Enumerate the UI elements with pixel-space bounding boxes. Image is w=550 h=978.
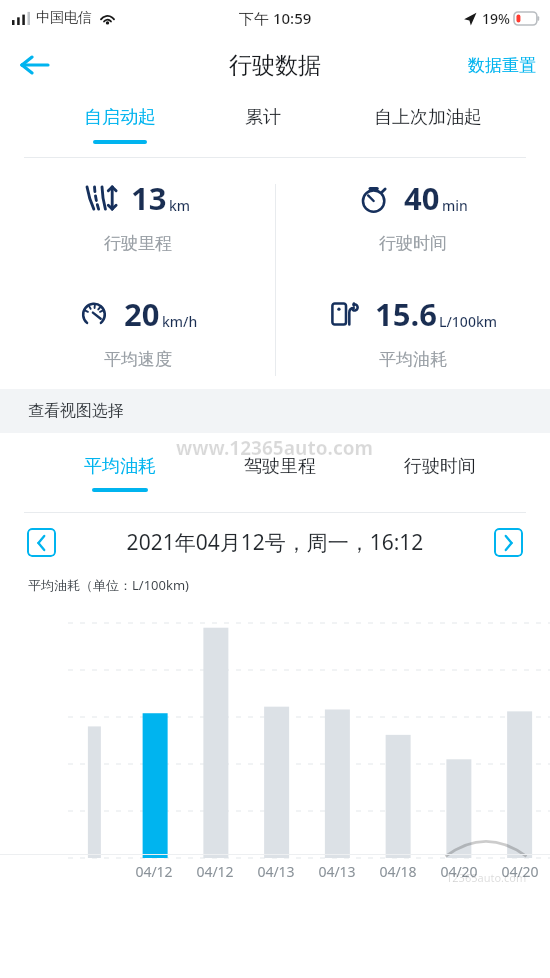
staticText: 19% <box>482 9 510 28</box>
staticText: www.12365auto.com <box>176 435 374 461</box>
button[interactable]: 40 <box>275 158 550 273</box>
staticText: 04/13 <box>257 862 295 881</box>
staticText: 数据重置 <box>468 55 536 76</box>
staticText: 04/13 <box>318 862 356 881</box>
staticText: 中国电信 <box>36 9 92 27</box>
staticText: 行驶时间 <box>404 455 476 478</box>
staticText: L/100km <box>439 312 497 331</box>
staticText: 40 <box>404 177 440 219</box>
staticText: 04/12 <box>196 862 234 881</box>
staticText: 04/20 <box>440 862 478 881</box>
staticText: 13 <box>131 177 167 219</box>
staticText: km/h <box>162 312 198 331</box>
button[interactable]: 平均油耗 <box>40 433 200 492</box>
staticText: 2021年04月12号，周一，16:12 <box>56 528 494 557</box>
staticText: 下午 10:59 <box>239 8 312 28</box>
staticText: 平均油耗 <box>84 455 156 478</box>
staticText: 04/18 <box>379 862 417 881</box>
staticText: 行驶数据 <box>229 51 321 80</box>
button[interactable]: 15.6 <box>275 273 550 389</box>
staticText: 平均油耗 <box>28 577 80 593</box>
staticText: 12365auto.com <box>446 870 527 885</box>
staticText: 平均油耗 <box>379 349 447 370</box>
staticText: 自启动起 <box>84 106 156 129</box>
button[interactable]: 下一天 <box>494 528 523 557</box>
staticText: min <box>442 196 468 215</box>
button[interactable]: 行驶时间 <box>360 433 520 488</box>
staticText: 行驶时间 <box>379 233 447 254</box>
staticText: km <box>169 196 191 215</box>
staticText: 驾驶里程 <box>244 455 316 478</box>
staticText: 平均速度 <box>104 349 172 370</box>
staticText: 04/12 <box>135 862 173 881</box>
button[interactable]: 自启动起 <box>44 94 195 157</box>
button[interactable]: 自上次加油起 <box>331 94 524 157</box>
staticText: 行驶里程 <box>104 233 172 254</box>
staticText: 累计 <box>245 106 281 129</box>
button[interactable]: 20 <box>0 273 275 389</box>
staticText: （单位：L/100km) <box>80 576 189 594</box>
staticText: 04/20 <box>501 862 539 881</box>
button[interactable]: 累计 <box>195 94 331 157</box>
button[interactable]: 上一天 <box>27 528 56 557</box>
button[interactable]: 13 <box>0 158 275 273</box>
staticText: 查看视图选择 <box>28 401 124 421</box>
button[interactable]: 数据重置 <box>454 45 550 86</box>
button[interactable]: 驾驶里程 <box>200 433 360 488</box>
staticText: 20 <box>124 293 160 335</box>
staticText: 15.6 <box>375 293 437 335</box>
staticText: 自上次加油起 <box>374 106 482 129</box>
button[interactable]: 返回 <box>8 39 60 91</box>
